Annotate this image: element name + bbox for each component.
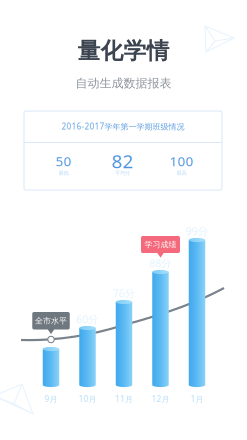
staticText: 100: [169, 152, 193, 170]
staticText: 60分: [76, 312, 99, 326]
staticText: 最高: [176, 170, 186, 176]
staticText: 自动生成数据报表: [75, 76, 171, 90]
staticText: 1月: [190, 394, 203, 404]
staticText: 学习成绩: [144, 240, 176, 249]
staticText: 9月: [44, 394, 57, 404]
staticText: 82: [111, 149, 133, 173]
staticText: 最低: [58, 170, 68, 176]
staticText: 99分: [185, 224, 208, 238]
staticText: 2016-2017学年第一学期班级情况: [61, 121, 184, 132]
staticText: 10月: [78, 394, 96, 404]
staticText: 88分: [149, 256, 172, 270]
staticText: 76分: [112, 286, 135, 300]
staticText: 全市水平: [35, 316, 67, 326]
staticText: 12月: [151, 394, 169, 404]
staticText: 量化学情: [77, 37, 169, 65]
staticText: 平均分: [115, 170, 130, 176]
staticText: 11月: [115, 394, 133, 404]
staticText: 50: [55, 152, 71, 170]
